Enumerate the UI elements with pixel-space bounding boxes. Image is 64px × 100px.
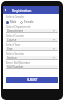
staticText: SUBMIT xyxy=(27,78,38,82)
button[interactable]: Year xyxy=(6,47,58,51)
staticText: Course xyxy=(7,38,17,42)
button[interactable]: Back xyxy=(4,8,7,12)
staticText: Roll Number xyxy=(7,65,24,69)
staticText: Enter Roll Number xyxy=(6,61,31,65)
staticText: Male xyxy=(10,20,17,24)
staticText: Section xyxy=(7,56,17,60)
staticText: Select Year xyxy=(6,43,21,47)
button[interactable]: Course xyxy=(6,38,58,42)
staticText: Select Section xyxy=(6,52,25,56)
button[interactable]: Roll Number xyxy=(6,65,58,69)
staticText: Female xyxy=(24,20,34,24)
button[interactable]: Section xyxy=(6,56,58,60)
staticText: Registration xyxy=(12,8,32,13)
staticText: Select Gender xyxy=(6,15,25,19)
staticText: Select Course xyxy=(6,34,24,38)
button[interactable]: Female xyxy=(20,20,34,24)
staticText: Select Department xyxy=(6,25,31,29)
button[interactable]: SUBMIT xyxy=(6,77,58,83)
staticText: Year xyxy=(7,47,13,51)
button[interactable]: Department xyxy=(6,29,58,33)
staticText: Department xyxy=(7,29,24,33)
button[interactable]: Male xyxy=(6,20,17,24)
